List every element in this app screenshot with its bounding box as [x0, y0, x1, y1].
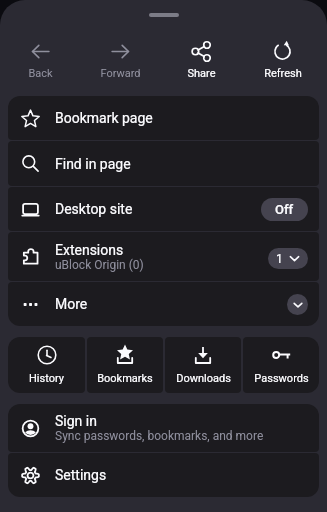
- button[interactable]: Bookmarks: [87, 337, 163, 393]
- staticText: Bookmark page: [55, 110, 153, 126]
- staticText: Bookmarks: [97, 372, 153, 385]
- staticText: 1: [276, 252, 283, 266]
- button[interactable]: Passwords: [243, 337, 319, 393]
- staticText: Share: [187, 67, 216, 80]
- button[interactable]: Extensions: [8, 232, 319, 281]
- staticText: History: [29, 372, 64, 385]
- staticText: Off: [275, 202, 294, 217]
- staticText: Desktop site: [55, 201, 133, 217]
- button[interactable]: Bookmark page: [8, 96, 319, 140]
- button[interactable]: Sign in: [8, 404, 319, 452]
- staticText: Settings: [55, 467, 107, 483]
- staticText: Back: [28, 67, 53, 80]
- button[interactable]: 1: [268, 248, 308, 269]
- button[interactable]: Share: [161, 17, 242, 96]
- button[interactable]: Settings: [8, 453, 319, 497]
- button[interactable]: Refresh: [242, 17, 323, 96]
- button[interactable]: Expand more: [287, 294, 308, 315]
- staticText: Extensions: [55, 242, 124, 258]
- staticText: Forward: [100, 67, 141, 80]
- button[interactable]: History: [8, 337, 85, 393]
- button[interactable]: Off: [261, 198, 308, 221]
- staticText: Passwords: [254, 372, 309, 385]
- staticText: Sync passwords, bookmarks, and more: [55, 429, 264, 443]
- staticText: Refresh: [264, 67, 302, 80]
- staticText: Find in page: [55, 156, 131, 172]
- button[interactable]: Downloads: [165, 337, 241, 393]
- staticText: More: [55, 296, 88, 312]
- staticText: Downloads: [176, 372, 231, 385]
- button[interactable]: Find in page: [8, 141, 319, 186]
- staticText: uBlock Origin (0): [55, 258, 144, 272]
- button[interactable]: Desktop site: [8, 187, 319, 231]
- button[interactable]: Back: [0, 17, 80, 96]
- staticText: Sign in: [55, 413, 97, 429]
- button[interactable]: More: [8, 282, 319, 326]
- button[interactable]: Forward: [80, 17, 161, 96]
